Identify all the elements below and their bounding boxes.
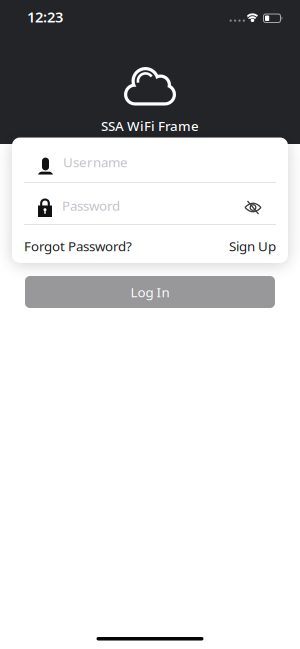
button[interactable]: Sign Up (229, 237, 276, 255)
button[interactable] (244, 200, 262, 214)
staticText: Password (62, 197, 120, 214)
staticText: Username (63, 153, 128, 171)
staticText: SSA WiFi Frame (101, 117, 199, 135)
staticText: 12:23 (27, 7, 63, 26)
button[interactable]: Forgot Password? (24, 237, 132, 255)
staticText: Sign Up (229, 237, 276, 255)
button[interactable]: Password (12, 183, 288, 224)
staticText: Forgot Password? (24, 237, 132, 255)
button[interactable]: Log In (25, 276, 275, 308)
button[interactable]: Username (12, 137, 288, 182)
staticText: Log In (130, 283, 169, 301)
